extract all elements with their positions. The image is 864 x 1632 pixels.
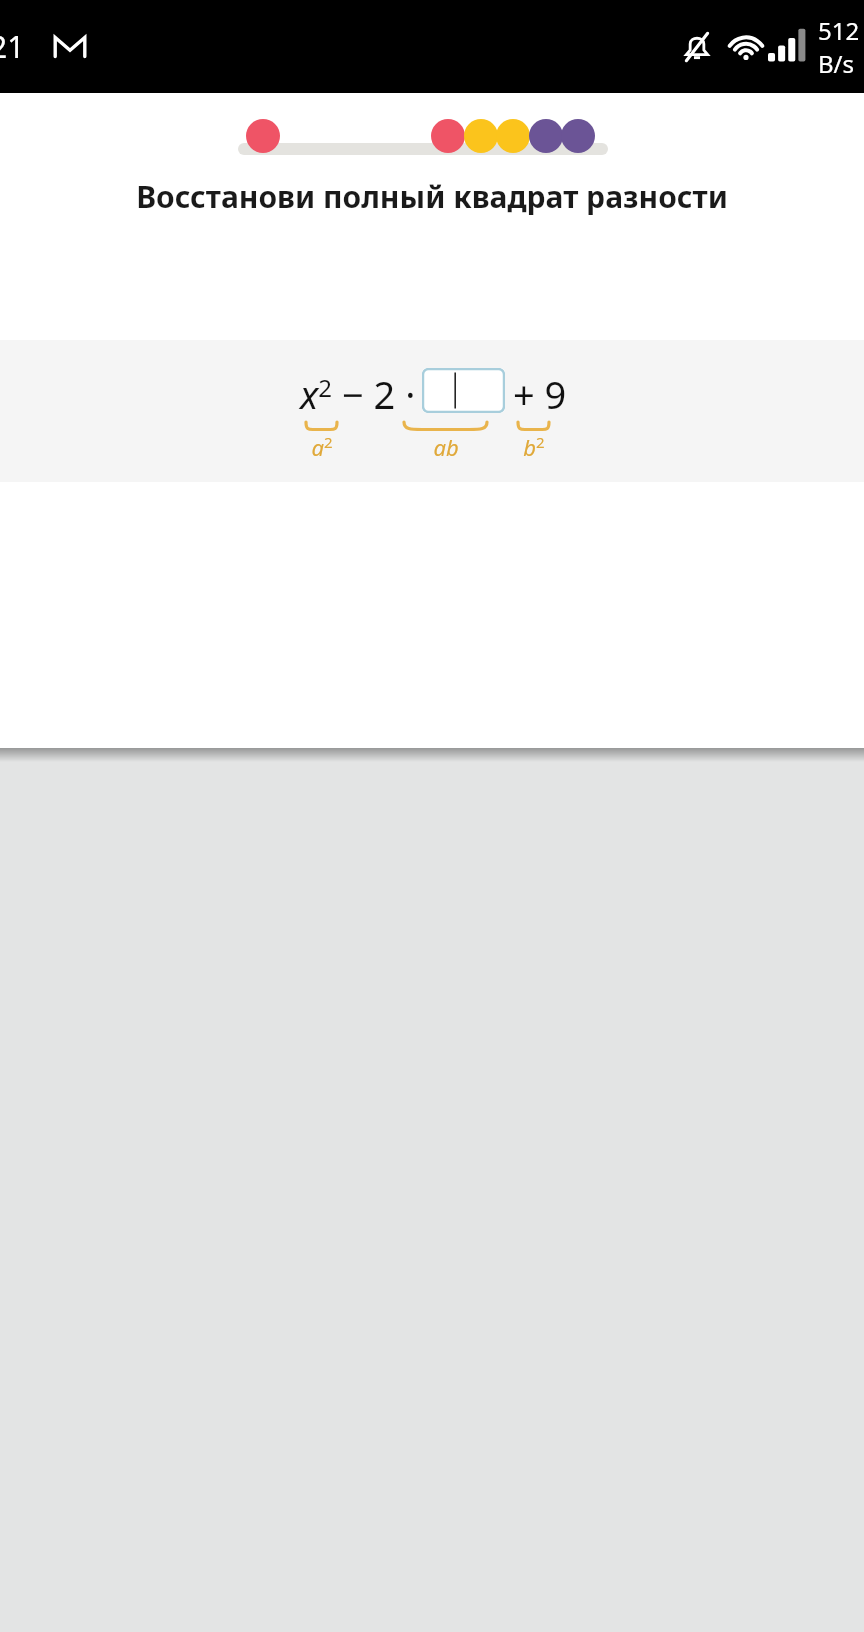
staticText: ab [433, 432, 459, 462]
staticText: b2 [523, 432, 545, 462]
staticText: x2 − 2 · [300, 368, 416, 420]
staticText: a2 [311, 432, 333, 462]
button[interactable]: Поле для ответа [422, 368, 505, 413]
staticText: 512 [818, 14, 860, 47]
button[interactable] [0, 105, 864, 175]
staticText: 21 [0, 26, 25, 67]
staticText: + 9 [513, 368, 567, 420]
staticText: B/s [818, 47, 855, 80]
staticText: Восстанови полный квадрат разности [136, 176, 728, 217]
